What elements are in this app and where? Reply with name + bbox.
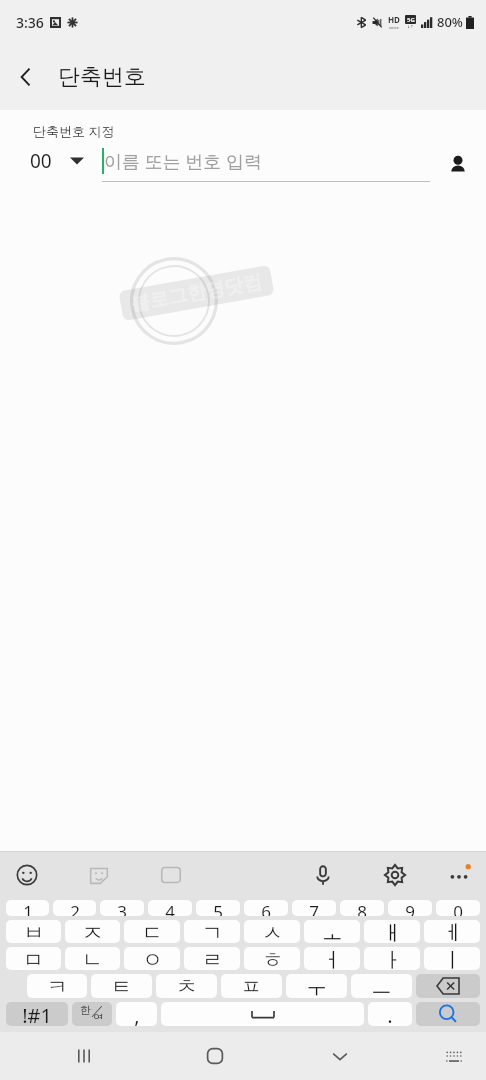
staticText: 5G [407,16,415,24]
staticText: ㅗ [322,920,343,943]
staticText: 8 [357,900,367,916]
staticText: 3:36 [16,13,44,32]
button[interactable]: Back [0,51,52,103]
button[interactable]: ㅂ [6,920,61,943]
button[interactable]: ㅏ [364,947,420,970]
staticText: ㄹ [202,947,223,970]
staticText: 6 [261,900,271,916]
button[interactable]: 7 [292,900,336,916]
button[interactable]: ㅊ [156,974,217,998]
button[interactable]: ㅣ [424,947,480,970]
button[interactable]: Emoji [12,860,42,890]
button[interactable]: !#1 [6,1002,68,1026]
button[interactable]: ㅓ [304,947,360,970]
button[interactable]: ㅋ [27,974,87,998]
staticText: ㅇ [142,947,163,970]
button[interactable]: ㄴ [65,947,120,970]
staticText: ㅌ [111,974,132,998]
staticText: ㄱ [202,920,223,943]
button[interactable]: ㅡ [351,974,412,998]
button[interactable]: Change keyboard [430,1032,478,1080]
staticText: HD [388,14,400,25]
button[interactable]: ㅗ [304,920,360,943]
button[interactable]: ㅎ [244,947,300,970]
staticText: 00 [30,148,52,174]
button[interactable]: ㅈ [65,920,120,943]
button[interactable]: Space [161,1002,364,1026]
staticText: 한 [80,1003,91,1017]
staticText: ㅐ [382,920,403,943]
staticText: ㅈ [82,920,103,943]
staticText: 0 [453,900,463,916]
button[interactable]: ㅍ [221,974,282,998]
button[interactable]: ㅌ [91,974,152,998]
staticText: ㅣ [442,947,463,970]
staticText: 블로그한영닷컴 [129,270,264,316]
button[interactable]: Keyboard settings [380,860,410,890]
staticText: ㅓ [322,947,343,970]
button[interactable]: ㅜ [286,974,347,998]
staticText: ㅏ [382,947,403,970]
button[interactable]: Select contact [430,148,486,182]
staticText: 1 [23,900,33,916]
staticText: 이름 또는 번호 입력 [104,149,263,174]
staticText: ㄴ [82,947,103,970]
button[interactable]: , [116,1002,157,1026]
staticText: 4 [165,900,175,916]
button[interactable]: 9 [388,900,432,916]
button[interactable]: Voice input [308,860,338,890]
button[interactable]: ㅁ [6,947,61,970]
staticText: !#1 [22,1002,52,1026]
button[interactable]: 한 [72,1002,112,1026]
staticText: 80% [437,13,463,31]
staticText: 단축번호 지정 [33,122,115,140]
button[interactable]: ㄱ [184,920,240,943]
button[interactable]: 8 [340,900,384,916]
button[interactable]: 5 [196,900,240,916]
button[interactable]: GIF [156,860,186,890]
staticText: ㅅ [262,920,283,943]
staticText: ↓↑ [407,24,414,29]
staticText: ／ [91,1002,104,1018]
button[interactable]: ㅅ [244,920,300,943]
staticText: ㅊ [176,974,197,998]
staticText: ㅡ [371,974,392,998]
staticText: 영 [93,1011,104,1019]
button[interactable]: Stickers [84,860,114,890]
staticText: . [387,1002,393,1026]
staticText: ㅍ [241,974,262,998]
staticText: ㅂ [23,920,44,943]
button[interactable]: ㅐ [364,920,420,943]
button[interactable]: 이름 또는 번호 입력 [102,148,430,182]
button[interactable]: Home [191,1032,239,1080]
staticText: ㅔ [442,920,463,943]
staticText: ㅎ [262,947,283,970]
button[interactable]: More options [444,860,474,890]
button[interactable]: . [368,1002,412,1026]
button[interactable]: ㄷ [124,920,180,943]
button[interactable]: ㄹ [184,947,240,970]
staticText: ㅋ [47,974,68,998]
staticText: 5 [213,900,223,916]
staticText: voice [389,25,399,30]
staticText: ㅜ [306,974,327,998]
button[interactable]: Recents [60,1032,108,1080]
button[interactable]: 00 [30,148,84,174]
button[interactable]: 4 [148,900,192,916]
button[interactable]: 1 [6,900,49,916]
staticText: 7 [309,900,319,916]
button[interactable]: 3 [100,900,144,916]
staticText: 3 [117,900,127,916]
staticText: 단축번호 [58,63,146,91]
button[interactable]: Hide keyboard [316,1032,364,1080]
button[interactable]: ㅔ [424,920,480,943]
staticText: 2 [70,900,80,916]
button[interactable]: ㅇ [124,947,180,970]
staticText: ㅁ [23,947,44,970]
button[interactable]: 2 [53,900,96,916]
button[interactable]: 0 [436,900,480,916]
button[interactable]: Search [416,1002,480,1026]
button[interactable]: Backspace [416,974,480,998]
staticText: ㄷ [142,920,163,943]
button[interactable]: 6 [244,900,288,916]
